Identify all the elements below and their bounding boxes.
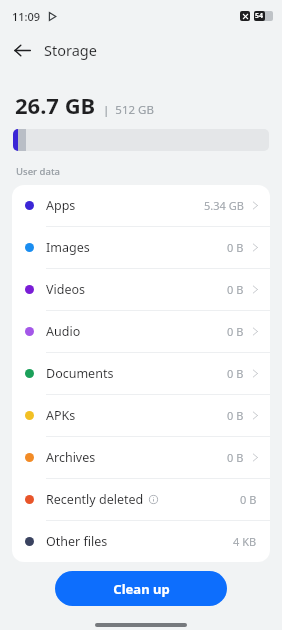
staticText: 5.34 GB xyxy=(204,198,244,213)
button[interactable]: APKs xyxy=(12,395,270,436)
staticText: Apps xyxy=(46,197,76,214)
staticText: Audio xyxy=(46,323,81,340)
staticText: 26.7 GB xyxy=(15,90,96,120)
staticText: 0 B xyxy=(227,366,244,381)
staticText: Images xyxy=(46,239,90,256)
staticText: Other files xyxy=(46,533,108,550)
staticText: 0 B xyxy=(227,450,244,465)
staticText: Clean up xyxy=(113,580,170,598)
staticText: | 512 GB xyxy=(103,102,154,118)
staticText: 4 KB xyxy=(233,534,257,549)
staticText: 0 B xyxy=(227,240,244,255)
staticText: Storage xyxy=(44,40,97,60)
staticText: 0 B xyxy=(240,492,257,507)
staticText: 0 B xyxy=(227,282,244,297)
staticText: Recently deleted xyxy=(46,491,144,508)
staticText: Videos xyxy=(46,281,86,298)
staticText: Archives xyxy=(46,449,96,466)
button[interactable]: Recently deleted xyxy=(12,479,270,520)
button[interactable]: Back xyxy=(6,34,38,66)
staticText: APKs xyxy=(46,407,76,424)
button[interactable]: Archives xyxy=(12,437,270,478)
staticText: 0 B xyxy=(227,408,244,423)
staticText: User data xyxy=(16,165,60,178)
staticText: Documents xyxy=(46,365,114,382)
button[interactable]: Videos xyxy=(12,269,270,310)
button[interactable]: Images xyxy=(12,227,270,268)
button[interactable]: Apps xyxy=(12,185,270,226)
button[interactable]: Audio xyxy=(12,311,270,352)
staticText: 0 B xyxy=(227,324,244,339)
button[interactable]: Other files xyxy=(12,521,270,562)
staticText: 11:09 xyxy=(12,9,41,24)
staticText: 54 xyxy=(255,11,264,21)
button[interactable]: Clean up xyxy=(55,571,227,606)
button[interactable]: Documents xyxy=(12,353,270,394)
